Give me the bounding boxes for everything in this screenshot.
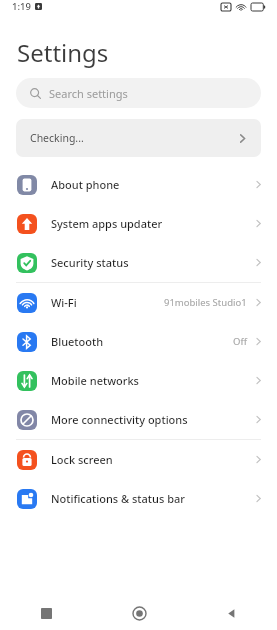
button[interactable]: About phone [0,165,277,204]
button[interactable]: More connectivity options [0,400,277,439]
button[interactable]: Wi-Fi [0,283,277,322]
button[interactable]: Checking... [16,119,261,157]
staticText: Lock screen [51,452,113,467]
staticText: 1:19 [12,0,31,13]
button[interactable]: Search settings [16,78,261,108]
staticText: Search settings [49,86,128,101]
staticText: Security status [51,255,129,270]
button[interactable]: Mobile networks [0,361,277,400]
staticText: Checking... [30,131,84,145]
staticText: Settings [17,36,109,69]
staticText: Off [233,335,247,348]
staticText: Notifications & status bar [51,491,185,506]
button[interactable]: Home [93,596,185,630]
staticText: 91mobiles Studio1 [164,296,247,309]
button[interactable]: Notifications & status bar [0,479,277,518]
staticText: System apps updater [51,216,163,231]
staticText: Wi-Fi [51,295,77,310]
staticText: Mobile networks [51,373,139,388]
button[interactable]: Security status [0,243,277,282]
button[interactable]: Recent apps [0,596,93,630]
staticText: More connectivity options [51,412,188,427]
button[interactable]: Back [185,596,277,630]
staticText: About phone [51,177,120,192]
button[interactable]: Lock screen [0,440,277,479]
staticText: Bluetooth [51,334,104,349]
button[interactable]: Bluetooth [0,322,277,361]
button[interactable]: System apps updater [0,204,277,243]
